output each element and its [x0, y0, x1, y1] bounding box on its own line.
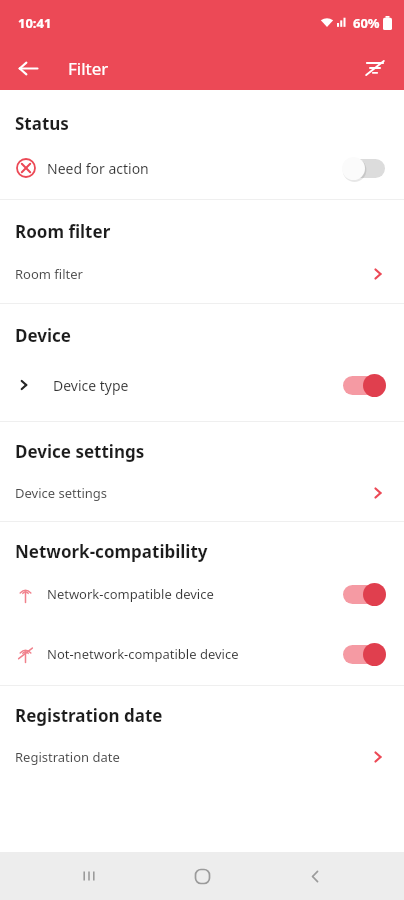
staticText: Network-compatibility	[15, 540, 208, 563]
button[interactable]: Home	[178, 852, 226, 900]
button[interactable]: Recents	[65, 852, 113, 900]
staticText: 10:41	[18, 14, 52, 32]
button[interactable]: Network-compatible device	[0, 565, 404, 623]
staticText: Device type	[53, 376, 129, 395]
button[interactable]: Need for action	[0, 137, 404, 199]
staticText: Device settings	[15, 440, 145, 463]
staticText: Room filter	[15, 220, 111, 243]
staticText: Filter	[68, 57, 109, 80]
staticText: Not-network-compatible device	[47, 645, 239, 663]
staticText: Device	[15, 324, 71, 347]
button[interactable]: Clear filter	[354, 47, 396, 89]
button[interactable]: Room filter	[0, 245, 404, 303]
staticText: Network-compatible device	[47, 585, 214, 603]
button[interactable]: Not-network-compatible device	[0, 623, 404, 685]
staticText: Status	[15, 112, 69, 135]
staticText: Registration date	[15, 704, 163, 727]
staticText: Device settings	[15, 484, 108, 502]
staticText: Registration date	[15, 748, 120, 766]
button[interactable]: Back	[8, 48, 48, 88]
button[interactable]: Back	[291, 852, 339, 900]
button[interactable]: Device type	[0, 349, 404, 421]
staticText: Room filter	[15, 265, 83, 283]
staticText: Need for action	[47, 159, 149, 178]
button[interactable]: Device settings	[0, 465, 404, 521]
button[interactable]: Registration date	[0, 729, 404, 785]
staticText: 60%	[353, 14, 380, 32]
